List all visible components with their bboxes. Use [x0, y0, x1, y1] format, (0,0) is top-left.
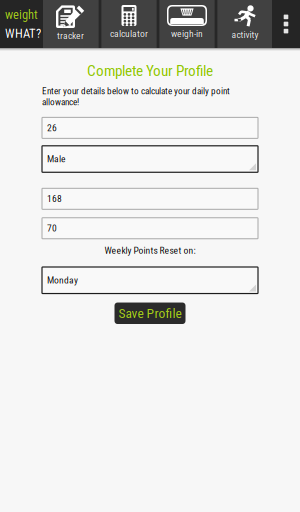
- button[interactable]: 168: [42, 188, 258, 209]
- staticText: Complete Your Profile: [87, 62, 213, 80]
- button[interactable]: Save Profile: [114, 302, 185, 324]
- button[interactable]: tracker: [43, 0, 98, 48]
- staticText: WHAT?: [5, 26, 41, 41]
- staticText: weight: [5, 7, 38, 22]
- button[interactable]: Male: [42, 146, 258, 172]
- button[interactable]: weigh-in: [160, 0, 214, 48]
- staticText: 26: [47, 122, 57, 133]
- staticText: weigh-in: [171, 28, 203, 39]
- staticText: Male: [47, 153, 66, 165]
- staticText: activity: [231, 29, 258, 40]
- button[interactable]: weight: [0, 0, 43, 48]
- button[interactable]: Monday: [42, 267, 258, 293]
- staticText: Weekly Points Reset on:: [104, 245, 195, 256]
- button[interactable]: activity: [218, 0, 272, 48]
- staticText: calculator: [110, 28, 148, 39]
- staticText: Enter your details below to calculate yo…: [42, 86, 230, 107]
- staticText: 168: [47, 193, 62, 204]
- button[interactable]: More options: [272, 0, 300, 48]
- staticText: 70: [47, 223, 57, 234]
- staticText: tracker: [57, 30, 84, 41]
- staticText: Monday: [47, 275, 78, 286]
- button[interactable]: 70: [42, 218, 258, 239]
- staticText: Save Profile: [118, 305, 181, 321]
- button[interactable]: calculator: [102, 0, 156, 48]
- button[interactable]: 26: [42, 117, 258, 138]
